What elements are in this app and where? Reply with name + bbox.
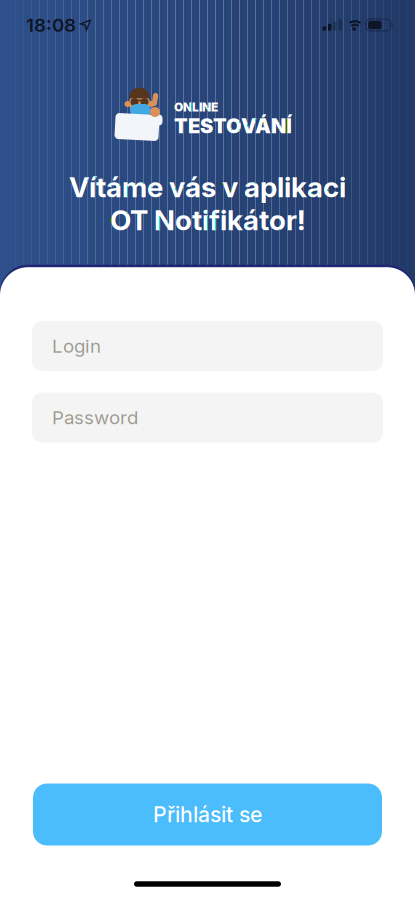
staticText: 18:08 [26,14,76,36]
textField[interactable]: Login [52,335,383,357]
staticText: ONLINE [174,100,218,114]
staticText: TESTOVÁNÍ [174,114,292,138]
textField[interactable]: Password [52,406,383,428]
staticText: Přihlásit se [153,802,262,827]
staticText: Password [52,406,138,428]
staticText: Login [52,335,101,357]
staticText: OT Notifikátor! [110,203,305,236]
button[interactable]: Přihlásit se [33,783,382,845]
staticText: Vítáme vás v aplikaci [69,170,346,203]
